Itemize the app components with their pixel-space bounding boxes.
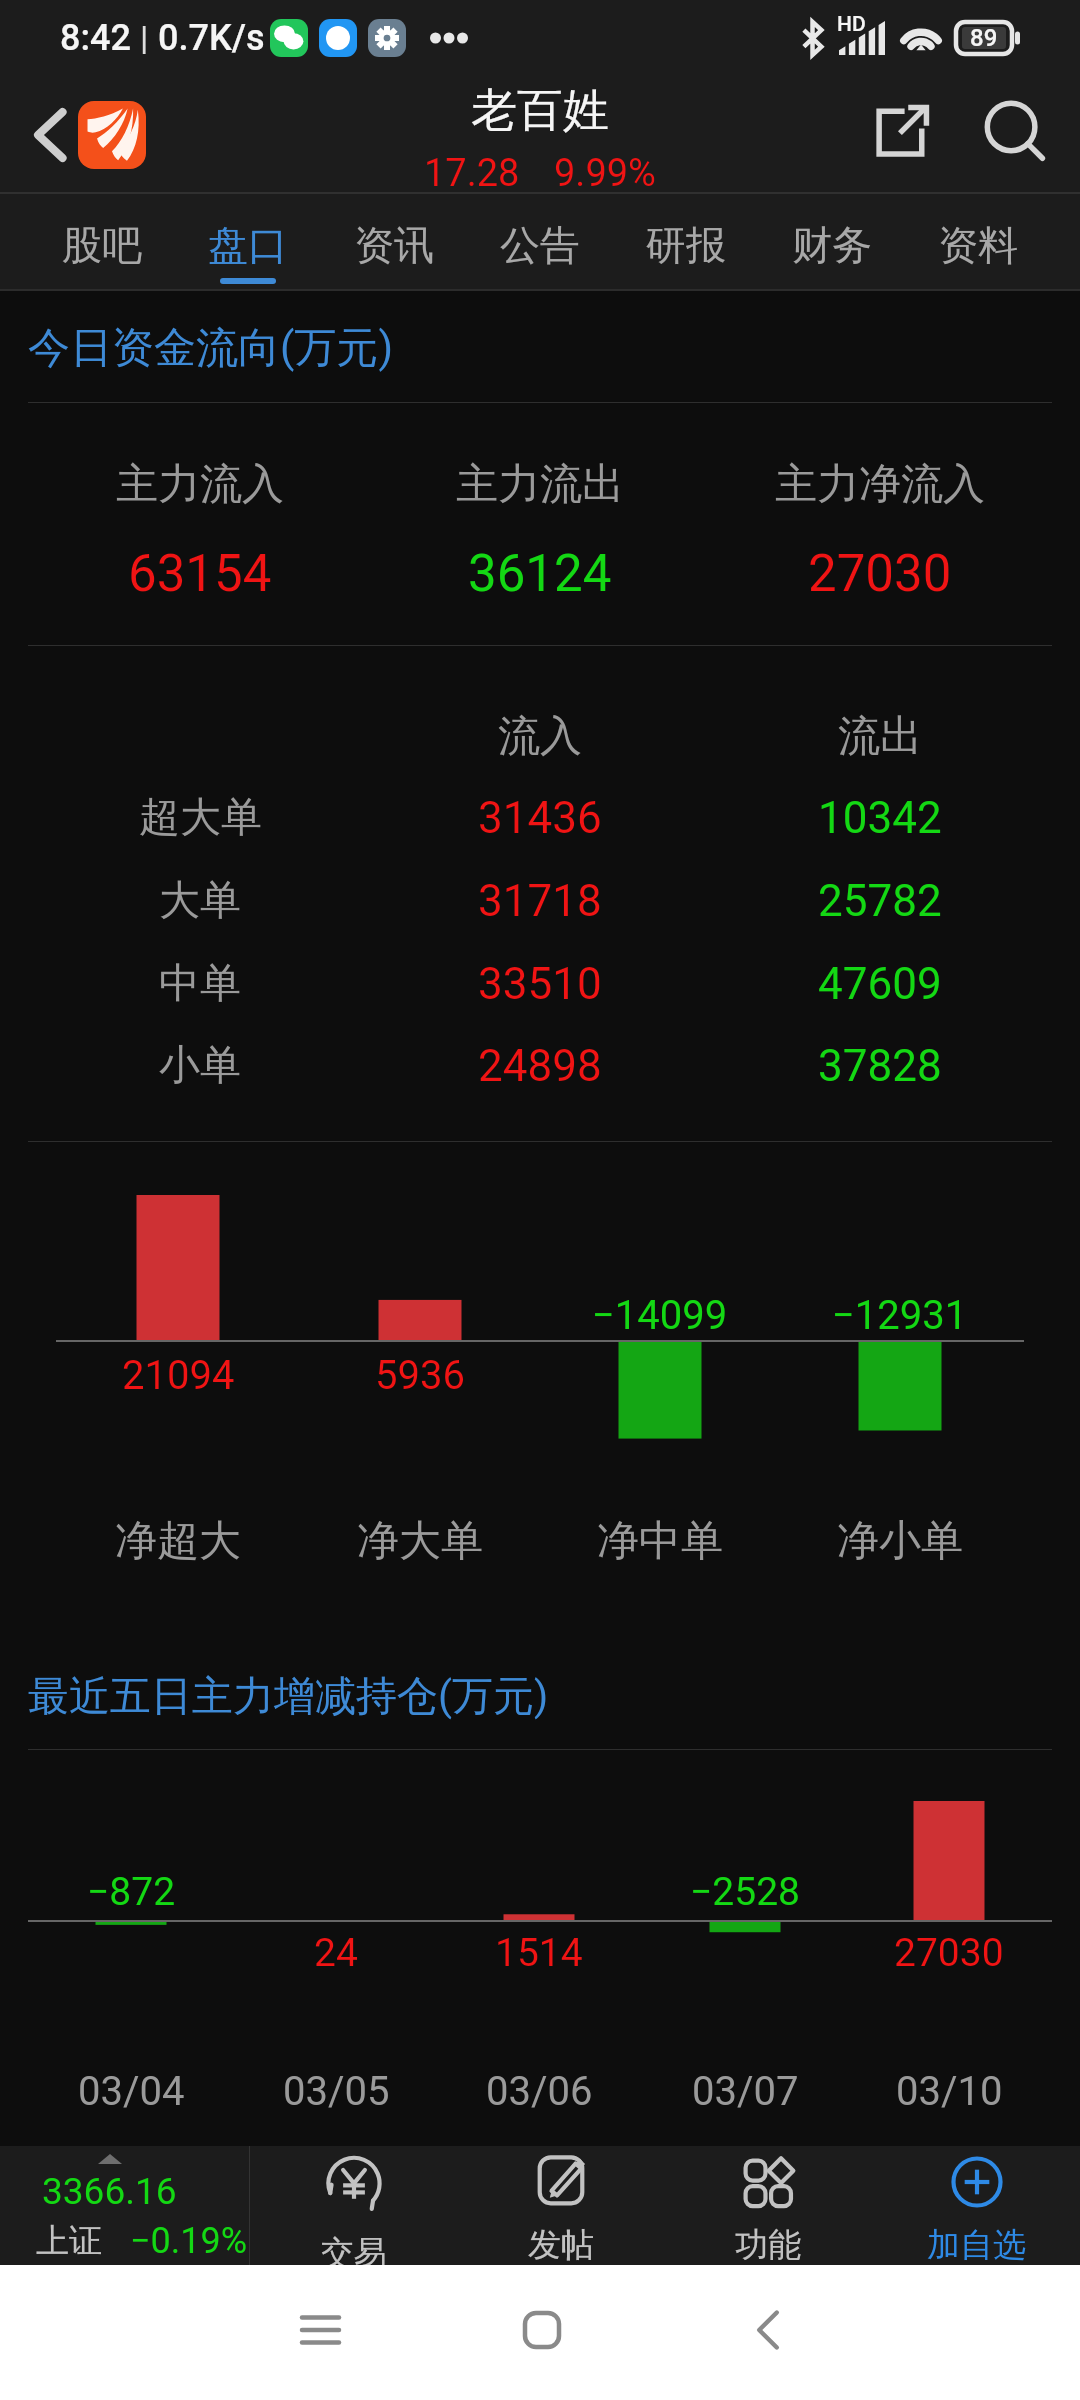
staticText: 10342	[818, 792, 942, 844]
button[interactable]: Back	[718, 2280, 818, 2380]
staticText: 03/10	[896, 2068, 1003, 2115]
staticText: 净超大	[115, 1515, 241, 1568]
staticText: 25782	[818, 875, 942, 927]
staticText: 今日资金流向(万元)	[28, 322, 393, 375]
staticText: 交易	[321, 2232, 387, 2273]
staticText: 17.28	[424, 151, 520, 196]
staticText: 中单	[159, 958, 241, 1010]
button[interactable]: Recent apps	[270, 2280, 370, 2380]
staticText: 21094	[122, 1352, 235, 1399]
staticText: 净中单	[597, 1515, 723, 1568]
button[interactable]: 财务	[759, 194, 905, 291]
staticText: HD	[837, 12, 866, 37]
staticText: 功能	[735, 2224, 801, 2266]
button[interactable]: 交易	[250, 2146, 457, 2265]
staticText: 63154	[128, 544, 272, 604]
staticText: 财务	[792, 220, 872, 270]
staticText: 03/05	[283, 2068, 390, 2115]
staticText: 9.99%	[554, 151, 656, 196]
staticText: 36124	[468, 544, 612, 604]
staticText: 31718	[478, 875, 602, 927]
button[interactable]: 流入	[0, 710, 1080, 762]
staticText: 净小单	[837, 1515, 963, 1568]
staticText: 1514	[495, 1930, 583, 1976]
staticText: 小单	[159, 1040, 241, 1092]
staticText: 资讯	[354, 220, 434, 270]
button[interactable]: Back	[8, 93, 92, 177]
button[interactable]: 公告	[467, 194, 613, 291]
staticText: 公告	[500, 220, 580, 270]
staticText: 发帖	[528, 2224, 594, 2266]
staticText: −12931	[832, 1292, 968, 1339]
staticText: 流出	[838, 710, 922, 762]
button[interactable]: 大单	[0, 875, 1080, 927]
staticText: 老百姓	[471, 82, 609, 140]
staticText: 24	[314, 1930, 358, 1976]
button[interactable]: 资讯	[321, 194, 467, 291]
staticText: 27030	[894, 1930, 1004, 1976]
staticText: 3366.16	[42, 2170, 177, 2213]
button[interactable]: 资料	[905, 194, 1051, 291]
staticText: 上证	[36, 2220, 102, 2262]
staticText: 最近五日主力增减持仓(万元)	[28, 1671, 549, 1723]
staticText: 主力流入	[116, 458, 284, 511]
button[interactable]: 盘口	[175, 194, 321, 291]
staticText: 股吧	[62, 220, 142, 270]
staticText: 37828	[818, 1040, 942, 1092]
staticText: −2528	[690, 1869, 800, 1915]
button[interactable]: 股吧	[29, 194, 175, 291]
button[interactable]: 3366.16	[0, 2146, 250, 2265]
staticText: 主力流出	[456, 458, 624, 511]
button[interactable]: Share	[860, 89, 944, 173]
staticText: |	[140, 18, 149, 58]
staticText: 大单	[159, 875, 241, 927]
staticText: 8:42	[60, 17, 131, 59]
staticText: 0.7K/s	[158, 17, 265, 59]
staticText: 5936	[375, 1352, 465, 1399]
staticText: −0.19%	[130, 2220, 248, 2262]
button[interactable]: 超大单	[0, 792, 1080, 844]
staticText: 31436	[478, 792, 602, 844]
staticText: 24898	[478, 1040, 602, 1092]
button[interactable]: 中单	[0, 958, 1080, 1010]
staticText: 流入	[498, 710, 582, 762]
staticText: 27030	[808, 544, 952, 604]
button[interactable]: 小单	[0, 1040, 1080, 1092]
staticText: −872	[87, 1869, 176, 1915]
staticText: 净大单	[357, 1515, 483, 1568]
staticText: 盘口	[208, 220, 288, 270]
staticText: 03/07	[692, 2068, 799, 2115]
button[interactable]: Home	[78, 101, 146, 169]
button[interactable]: 研报	[613, 194, 759, 291]
staticText: 超大单	[139, 792, 262, 844]
staticText: −14099	[592, 1292, 728, 1339]
button[interactable]: Search	[970, 87, 1058, 175]
staticText: 89	[970, 24, 998, 52]
staticText: 主力净流入	[775, 458, 985, 511]
staticText: 03/06	[486, 2068, 593, 2115]
staticText: 加自选	[927, 2224, 1026, 2266]
staticText: 47609	[818, 958, 942, 1010]
button[interactable]: Home	[492, 2280, 592, 2380]
button[interactable]: 加自选	[872, 2146, 1080, 2265]
staticText: 33510	[478, 958, 602, 1010]
button[interactable]: 发帖	[457, 2146, 664, 2265]
button[interactable]: 功能	[664, 2146, 872, 2265]
staticText: 研报	[646, 220, 726, 270]
staticText: 资料	[938, 220, 1018, 270]
staticText: 03/04	[78, 2068, 185, 2115]
